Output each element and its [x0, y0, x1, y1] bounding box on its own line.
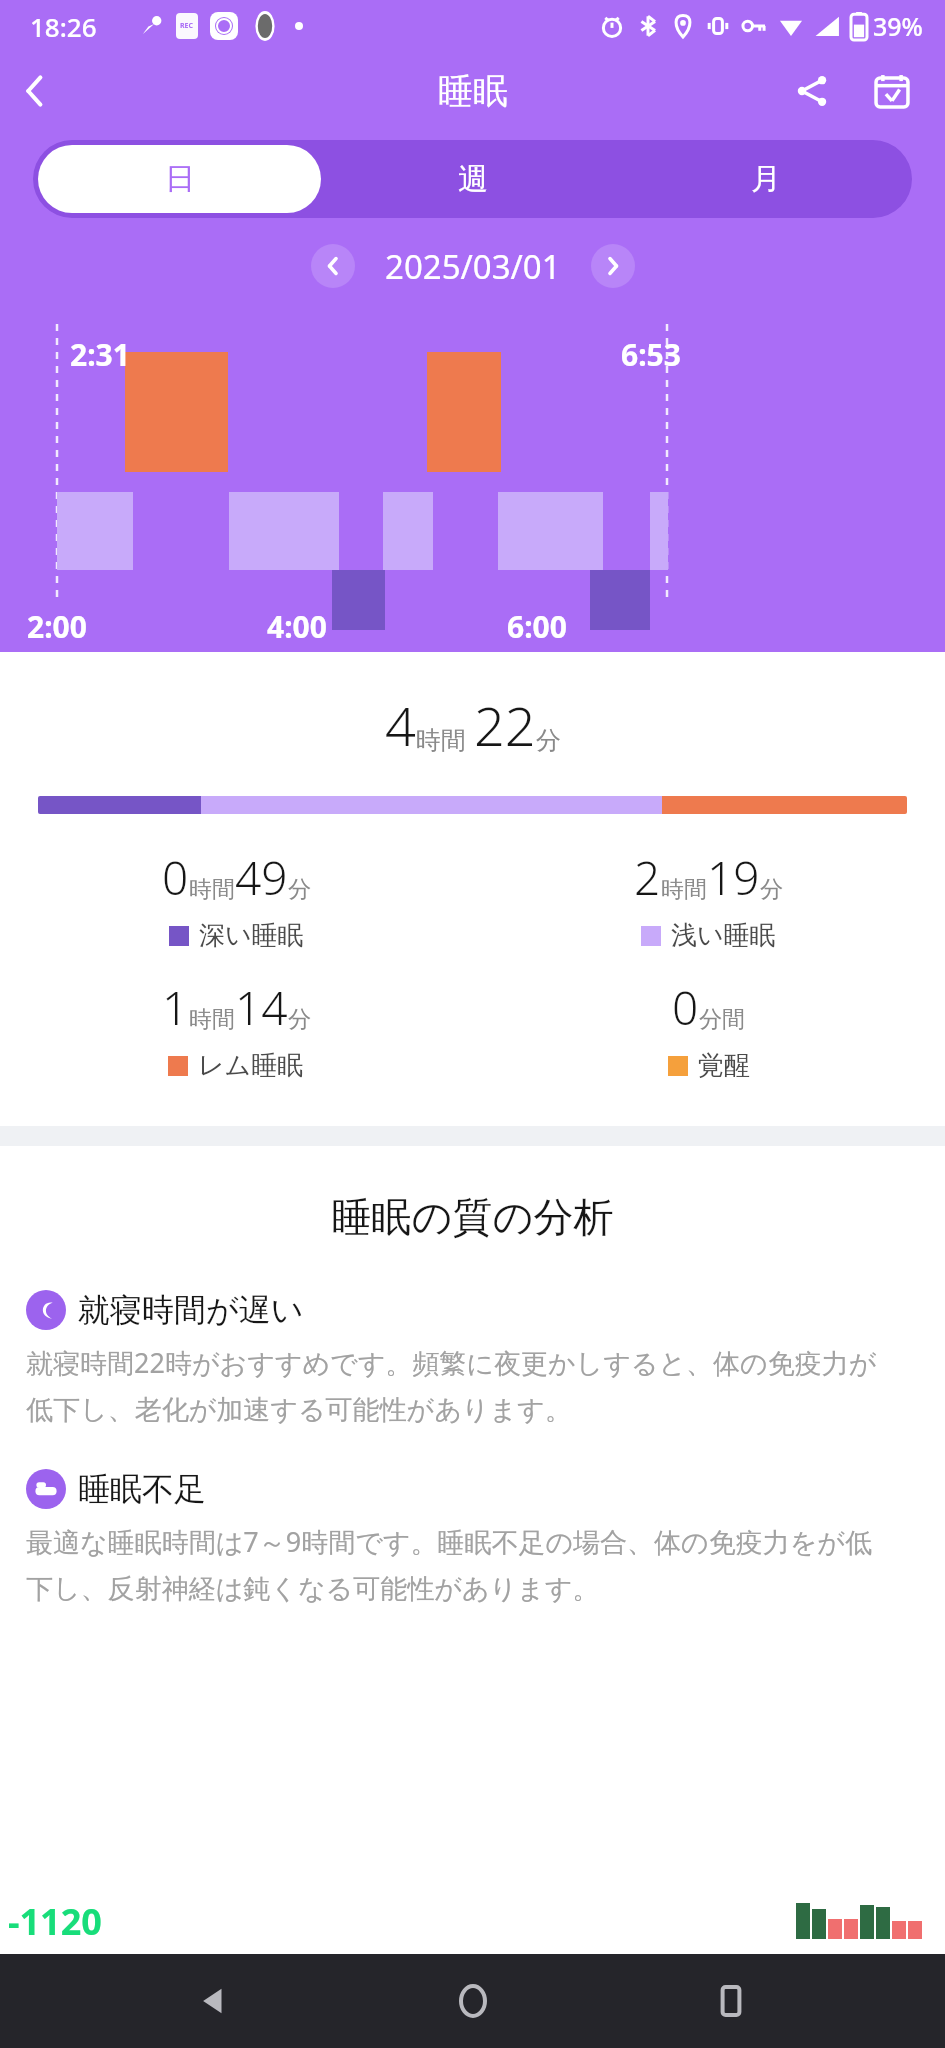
- staticText: 分: [288, 875, 311, 904]
- button[interactable]: Back: [169, 1956, 259, 2046]
- staticText: 39%: [873, 9, 923, 43]
- staticText: 最適な睡眠時間は7～9時間です。睡眠不足の場合、体の免疫力をが低 下し、反射神経…: [26, 1523, 872, 1606]
- staticText: 19: [707, 846, 760, 909]
- button[interactable]: Calendar: [859, 58, 925, 124]
- staticText: -1120: [8, 1897, 102, 1946]
- staticText: 分: [288, 1005, 311, 1034]
- button[interactable]: Back: [0, 56, 70, 126]
- staticText: 1: [162, 976, 189, 1039]
- staticText: 覚醒: [698, 1049, 750, 1082]
- staticText: 49: [235, 846, 288, 909]
- button[interactable]: Recent apps: [686, 1956, 776, 2046]
- staticText: 分: [760, 875, 783, 904]
- button[interactable]: 週: [331, 145, 614, 213]
- button[interactable]: 日: [38, 145, 321, 213]
- button[interactable]: Home: [428, 1956, 518, 2046]
- staticText: 2:31: [70, 334, 130, 375]
- staticText: 睡眠の質の分析: [0, 1192, 945, 1242]
- staticText: 6:53: [621, 334, 681, 375]
- staticText: 睡眠不足: [78, 1469, 206, 1509]
- staticText: 時間: [189, 1005, 235, 1034]
- staticText: 浅い睡眠: [671, 919, 776, 952]
- staticText: 18:26: [30, 9, 97, 44]
- staticText: 2: [634, 846, 661, 909]
- button[interactable]: Previous day: [311, 244, 355, 288]
- staticText: 4:00: [267, 606, 327, 647]
- staticText: 2025/03/01: [385, 244, 561, 289]
- staticText: レム睡眠: [198, 1049, 304, 1082]
- staticText: 分間: [699, 1005, 745, 1034]
- staticText: 分: [536, 725, 561, 756]
- staticText: 0: [162, 846, 189, 909]
- staticText: 就寝時間22時がおすすめです。頻繁に夜更かしすると、体の免疫力が 低下し、老化が…: [26, 1344, 877, 1427]
- staticText: 6:00: [507, 606, 567, 647]
- staticText: 時間: [416, 725, 466, 756]
- staticText: 週: [458, 160, 488, 198]
- button[interactable]: Next day: [591, 244, 635, 288]
- staticText: 時間: [661, 875, 707, 904]
- staticText: 日: [165, 160, 195, 198]
- staticText: 22: [474, 688, 536, 762]
- staticText: 就寝時間が遅い: [78, 1290, 304, 1330]
- staticText: 睡眠: [438, 69, 508, 113]
- staticText: 2:00: [27, 606, 87, 647]
- staticText: REC: [180, 21, 194, 31]
- staticText: 時間: [189, 875, 235, 904]
- staticText: 月: [751, 160, 781, 198]
- button[interactable]: Share: [779, 58, 845, 124]
- staticText: 14: [235, 976, 288, 1039]
- staticText: 0: [672, 976, 699, 1039]
- button[interactable]: 月: [624, 145, 907, 213]
- staticText: 深い睡眠: [199, 919, 304, 952]
- staticText: 4: [385, 688, 416, 762]
